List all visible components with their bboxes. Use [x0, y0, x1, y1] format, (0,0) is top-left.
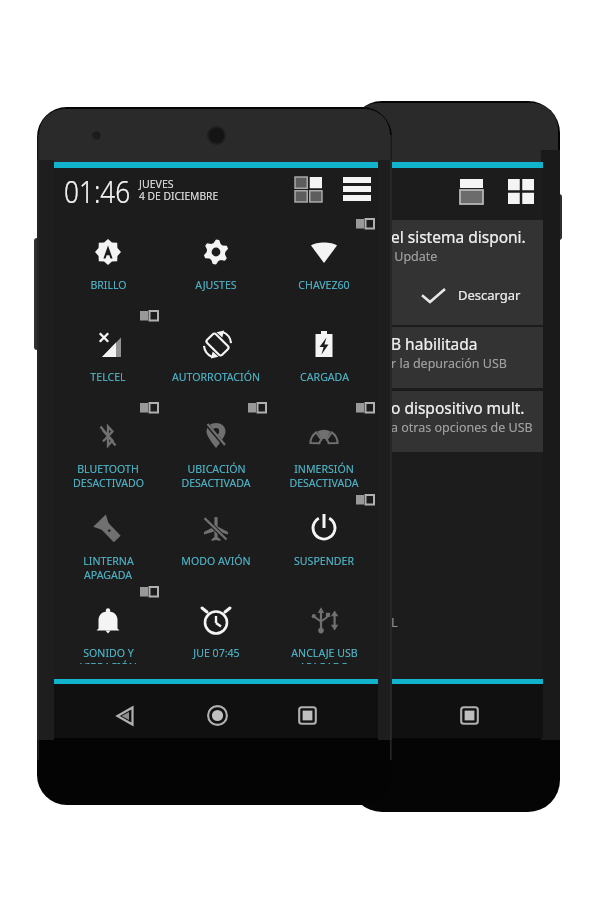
- button[interactable]: B habilitada: [330, 327, 543, 388]
- staticText: AJUSTES: [195, 278, 237, 292]
- staticText: INMERSIÓN: [294, 462, 354, 476]
- staticText: a otras opciones de USB: [391, 419, 533, 436]
- staticText: SUSPENDER: [294, 554, 354, 568]
- staticText: LINTERNA: [83, 554, 134, 568]
- staticText: VIBRACIÓN: [80, 660, 137, 664]
- staticText: AUTORROTACIÓN: [172, 370, 260, 384]
- staticText: 01:46: [64, 170, 131, 212]
- staticText: APAGADO: [299, 660, 349, 664]
- staticText: MODO AVIÓN: [181, 554, 251, 568]
- button[interactable]: LINTERNA: [54, 486, 162, 578]
- staticText: JUEVES: [139, 177, 174, 191]
- button[interactable]: SUSPENDER: [270, 486, 378, 578]
- staticText: DESACTIVADA: [181, 476, 251, 490]
- button[interactable]: Notifications: [343, 177, 371, 201]
- staticText: 4 DE DICIEMBRE: [139, 189, 218, 203]
- button[interactable]: AJUSTES: [162, 210, 270, 302]
- button[interactable]: Home: [207, 705, 228, 726]
- staticText: B habilitada: [391, 333, 478, 354]
- staticText: L: [391, 613, 398, 631]
- staticText: SONIDO Y: [83, 646, 134, 660]
- button[interactable]: Quick settings: [508, 179, 534, 204]
- button[interactable]: Recents: [460, 706, 479, 725]
- staticText: CHAVEZ60: [298, 278, 350, 292]
- staticText: CARGADA: [300, 370, 349, 384]
- button[interactable]: Recents: [298, 706, 317, 725]
- staticText: Update: [391, 248, 438, 265]
- button[interactable]: ANCLAJE USB: [270, 578, 378, 664]
- button[interactable]: UBICACIÓN: [162, 394, 270, 486]
- button[interactable]: o dispositivo mult.: [330, 391, 543, 452]
- staticText: o dispositivo mult.: [391, 397, 525, 418]
- staticText: BRILLO: [90, 278, 127, 292]
- button[interactable]: INMERSIÓN: [270, 394, 378, 486]
- staticText: r la depuración USB: [391, 355, 507, 372]
- button[interactable]: el sistema disponi.: [330, 220, 543, 325]
- button[interactable]: Notifications: [460, 179, 483, 204]
- staticText: APAGADA: [84, 568, 132, 582]
- button[interactable]: CARGADA: [270, 302, 378, 394]
- button[interactable]: JUE 07:45: [162, 578, 270, 664]
- button[interactable]: Quick settings: [295, 177, 322, 202]
- staticText: TELCEL: [90, 370, 126, 384]
- staticText: UBICACIÓN: [187, 462, 246, 476]
- staticText: ANCLAJE USB: [291, 646, 358, 660]
- staticText: el sistema disponi.: [391, 226, 526, 247]
- button[interactable]: CHAVEZ60: [270, 210, 378, 302]
- staticText: Descargar: [458, 286, 521, 304]
- staticText: JUE 07:45: [193, 646, 240, 660]
- button[interactable]: BRILLO: [54, 210, 162, 302]
- button[interactable]: Back: [116, 706, 134, 726]
- button[interactable]: AUTORROTACIÓN: [162, 302, 270, 394]
- button[interactable]: MODO AVIÓN: [162, 486, 270, 578]
- staticText: DESACTIVADO: [73, 476, 144, 490]
- button[interactable]: BLUETOOTH: [54, 394, 162, 486]
- staticText: BLUETOOTH: [77, 462, 139, 476]
- button[interactable]: TELCEL: [54, 302, 162, 394]
- staticText: DESACTIVADA: [289, 476, 359, 490]
- button[interactable]: SONIDO Y: [54, 578, 162, 664]
